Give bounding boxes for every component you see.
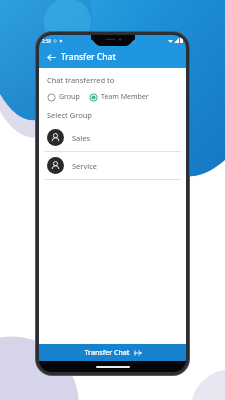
staticText: 2:58	[42, 38, 51, 44]
button[interactable]: Back	[44, 50, 58, 64]
button[interactable]: Transfer Chat	[39, 344, 186, 361]
staticText: Transfer Chat	[84, 348, 130, 358]
button[interactable]: Group	[46, 91, 81, 103]
staticText: Transfer Chat	[61, 51, 116, 63]
staticText: Select Group	[47, 110, 92, 120]
staticText: Service	[72, 161, 98, 171]
button[interactable]: Sales	[39, 124, 186, 152]
staticText: Chat transferred to	[47, 75, 115, 85]
button[interactable]: Team Member	[88, 91, 150, 103]
staticText: Group	[59, 92, 80, 102]
button[interactable]: Service	[39, 152, 186, 180]
staticText: Team Member	[101, 92, 149, 102]
staticText: Sales	[72, 133, 91, 143]
